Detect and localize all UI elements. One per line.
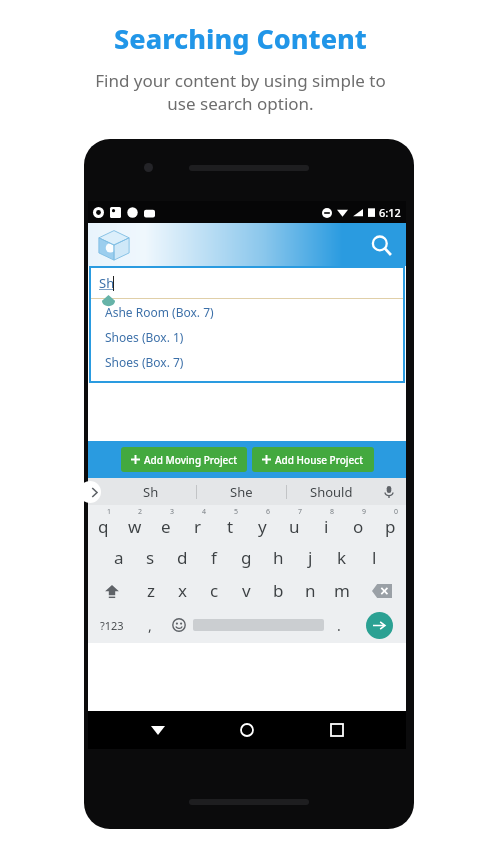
staticText: Ashe Room (Box. 7): [105, 304, 214, 320]
staticText: f: [211, 546, 217, 569]
button[interactable]: Add Moving Project: [121, 447, 247, 472]
staticText: a: [114, 546, 124, 569]
staticText: ,: [148, 616, 152, 635]
button[interactable]: g: [230, 541, 262, 574]
button[interactable]: ?123: [88, 607, 135, 643]
button[interactable]: n: [294, 574, 326, 607]
button[interactable]: Voice input: [379, 482, 399, 502]
staticText: j: [308, 546, 313, 569]
staticText: .: [337, 616, 341, 635]
button[interactable]: 7: [278, 505, 310, 541]
staticText: 6:12: [379, 205, 401, 220]
staticText: i: [324, 515, 329, 538]
button[interactable]: j: [294, 541, 326, 574]
staticText: Shoes (Box. 1): [105, 329, 184, 345]
button[interactable]: Emoji: [164, 607, 193, 643]
staticText: n: [305, 579, 316, 602]
button[interactable]: Home: [227, 711, 267, 749]
button[interactable]: She: [197, 478, 286, 505]
button[interactable]: v: [230, 574, 262, 607]
button[interactable]: 1: [88, 505, 119, 541]
staticText: Add House Project: [275, 453, 364, 467]
button[interactable]: Should: [287, 478, 376, 505]
staticText: Sh: [99, 274, 115, 292]
staticText: 5: [234, 507, 239, 517]
button[interactable]: 0: [374, 505, 406, 541]
button[interactable]: Recents: [317, 711, 357, 749]
button[interactable]: x: [166, 574, 198, 607]
button[interactable]: Back: [138, 711, 178, 749]
button[interactable]: f: [198, 541, 230, 574]
staticText: o: [353, 515, 364, 538]
staticText: l: [372, 546, 377, 569]
button[interactable]: 9: [342, 505, 374, 541]
staticText: Should: [310, 483, 353, 501]
staticText: 9: [362, 507, 367, 517]
button[interactable]: 8: [310, 505, 342, 541]
button[interactable]: m: [326, 574, 358, 607]
staticText: ?123: [100, 618, 124, 633]
button[interactable]: 6: [246, 505, 278, 541]
staticText: d: [177, 546, 188, 569]
button[interactable]: z: [135, 574, 166, 607]
staticText: Shoes (Box. 7): [105, 354, 184, 370]
staticText: b: [273, 579, 284, 602]
button[interactable]: .: [324, 607, 353, 643]
button[interactable]: 3: [150, 505, 182, 541]
staticText: 7: [298, 507, 303, 517]
button[interactable]: Sh: [106, 478, 196, 505]
staticText: 8: [330, 507, 335, 517]
staticText: Find your content by using simple to use…: [95, 69, 386, 115]
button[interactable]: k: [326, 541, 358, 574]
button[interactable]: s: [134, 541, 166, 574]
button[interactable]: Add House Project: [252, 447, 374, 472]
staticText: She: [230, 483, 253, 501]
staticText: h: [273, 546, 284, 569]
staticText: k: [337, 546, 347, 569]
staticText: p: [385, 515, 396, 538]
staticText: e: [161, 515, 171, 538]
button[interactable]: c: [198, 574, 230, 607]
button[interactable]: b: [262, 574, 294, 607]
button[interactable]: Shift: [88, 574, 135, 607]
button[interactable]: Ashe Room (Box. 7): [91, 299, 403, 324]
button[interactable]: a: [103, 541, 134, 574]
staticText: g: [241, 546, 252, 569]
staticText: 4: [202, 507, 207, 517]
button[interactable]: 4: [182, 505, 214, 541]
button[interactable]: Search: [364, 228, 398, 262]
staticText: Add Moving Project: [144, 453, 238, 467]
button[interactable]: d: [166, 541, 198, 574]
staticText: c: [210, 579, 219, 602]
staticText: r: [194, 515, 202, 538]
button[interactable]: ,: [135, 607, 164, 643]
button[interactable]: Shoes (Box. 1): [91, 324, 403, 349]
staticText: u: [289, 515, 300, 538]
staticText: m: [334, 579, 350, 602]
staticText: 3: [170, 507, 175, 517]
staticText: x: [178, 579, 187, 602]
staticText: t: [227, 515, 234, 538]
staticText: s: [146, 546, 155, 569]
staticText: y: [258, 515, 267, 538]
staticText: v: [242, 579, 251, 602]
button[interactable]: h: [262, 541, 294, 574]
staticText: 1: [107, 507, 112, 517]
button[interactable]: Enter: [353, 607, 406, 643]
button[interactable]: Backspace: [358, 574, 406, 607]
button[interactable]: More suggestions: [84, 481, 101, 503]
button[interactable]: Shoes (Box. 7): [91, 349, 403, 374]
staticText: 2: [138, 507, 143, 517]
staticText: w: [128, 515, 142, 538]
staticText: Searching Content: [114, 20, 367, 57]
staticText: Sh: [143, 483, 159, 501]
staticText: 0: [394, 507, 399, 517]
staticText: 6: [266, 507, 271, 517]
staticText: z: [147, 579, 155, 602]
button[interactable]: 2: [119, 505, 150, 541]
staticText: q: [98, 515, 109, 538]
button[interactable]: l: [358, 541, 390, 574]
button[interactable]: 5: [214, 505, 246, 541]
